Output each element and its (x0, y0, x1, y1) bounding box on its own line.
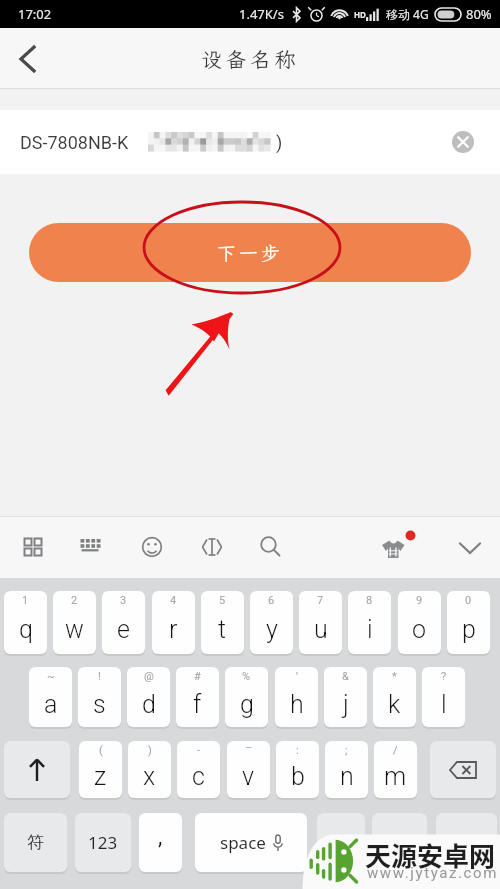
staticText: i (367, 615, 373, 644)
staticText: 80% (466, 5, 492, 23)
staticText: c (192, 762, 205, 791)
staticText: 移动 4G (386, 6, 429, 22)
staticText: * (392, 670, 397, 683)
button[interactable]: Keyboard layout (72, 528, 110, 566)
staticText: / (393, 744, 398, 757)
staticText: g (240, 690, 254, 719)
staticText: x (143, 762, 156, 791)
button[interactable]: : (276, 741, 319, 798)
staticText: d (142, 690, 156, 719)
staticText: r (169, 615, 178, 644)
staticText: e (117, 615, 130, 644)
staticText: 8 (366, 594, 373, 607)
staticText: ' (296, 670, 298, 683)
staticText: ) (276, 132, 283, 153)
staticText: @ (144, 670, 154, 683)
button[interactable]: 123 (75, 813, 131, 872)
staticText: 设备名称 (201, 45, 299, 73)
staticText: 6 (268, 594, 275, 607)
button[interactable]: / (374, 741, 417, 798)
button[interactable]: Hide keyboard (451, 528, 489, 566)
button[interactable]: 3 (102, 591, 145, 654)
button[interactable]: ! (78, 667, 121, 727)
button[interactable]: Emoji (133, 528, 171, 566)
staticText: % (242, 670, 251, 683)
staticText: u (314, 615, 328, 644)
button[interactable]: Move cursor (193, 528, 231, 566)
staticText: 3 (120, 594, 127, 607)
button[interactable]: 5 (201, 591, 244, 654)
staticText: 17:02 (18, 5, 52, 23)
button[interactable]: ‾ (227, 741, 270, 798)
button[interactable]: 8 (348, 591, 391, 654)
button[interactable]: Comma (139, 813, 182, 872)
button[interactable]: space (195, 813, 307, 872)
staticText: 7 (317, 594, 324, 607)
staticText: s (93, 690, 106, 719)
staticText: v (242, 762, 255, 791)
staticText: DS-7808NB-K (20, 132, 129, 153)
button[interactable]: 2 (53, 591, 96, 654)
button[interactable]: 4 (152, 591, 195, 654)
button[interactable]: Shift (4, 741, 70, 798)
button[interactable]: 7 (299, 591, 342, 654)
button[interactable]: Backspace (430, 741, 496, 798)
button[interactable]: ? (422, 667, 465, 727)
staticText: m (384, 762, 407, 791)
button[interactable]: % (225, 667, 268, 727)
staticText: ~ (47, 670, 55, 683)
staticText: # (194, 670, 201, 683)
button[interactable]: 0 (447, 591, 490, 654)
button[interactable] (372, 813, 427, 872)
staticText: ) (148, 744, 152, 757)
staticText: 2 (71, 594, 78, 607)
button[interactable]: 6 (250, 591, 293, 654)
staticText: p (462, 615, 476, 644)
staticText: , (158, 824, 163, 850)
staticText: h (290, 690, 304, 719)
button[interactable]: 1 (4, 591, 47, 654)
staticText: 下一步 (217, 240, 284, 265)
button[interactable]: Apps (14, 528, 52, 566)
button[interactable]: ( (79, 741, 122, 798)
button[interactable]: - (177, 741, 220, 798)
staticText: - (197, 744, 201, 757)
staticText: www.jytyaz.com (367, 864, 498, 882)
staticText: 1 (22, 594, 29, 607)
button[interactable]: ) (128, 741, 171, 798)
staticText: k (388, 690, 401, 719)
button[interactable]: @ (127, 667, 170, 727)
staticText: l (441, 690, 447, 719)
staticText: a (44, 690, 58, 719)
button[interactable]: Theme (378, 522, 416, 560)
button[interactable]: Search (252, 528, 290, 566)
button[interactable]: Clear text (448, 127, 478, 157)
staticText: w (65, 615, 84, 644)
staticText: q (19, 615, 33, 644)
button[interactable]: ~ (29, 667, 72, 727)
staticText: j (343, 690, 349, 719)
button[interactable]: Back (0, 28, 56, 89)
staticText: ; (345, 744, 348, 757)
button[interactable]: 下一步 (29, 223, 471, 282)
button[interactable]: ' (275, 667, 318, 727)
staticText: 5 (219, 594, 226, 607)
button[interactable]: ; (325, 741, 368, 798)
staticText: ? (441, 670, 447, 683)
button[interactable]: * (373, 667, 416, 727)
button[interactable] (436, 813, 497, 872)
staticText: ( (99, 744, 103, 757)
staticText: 天源安卓网 (365, 836, 496, 874)
staticText: & (342, 670, 349, 683)
staticText: f (193, 690, 202, 719)
staticText: space (220, 831, 266, 854)
button[interactable]: # (176, 667, 219, 727)
staticText: 符 (27, 832, 44, 853)
staticText: o (412, 615, 427, 644)
button[interactable]: 9 (398, 591, 441, 654)
staticText: 4 (170, 594, 177, 607)
button[interactable]: 符 (4, 813, 67, 872)
button[interactable] (317, 813, 365, 872)
staticText: y (266, 615, 278, 644)
button[interactable]: & (324, 667, 367, 727)
